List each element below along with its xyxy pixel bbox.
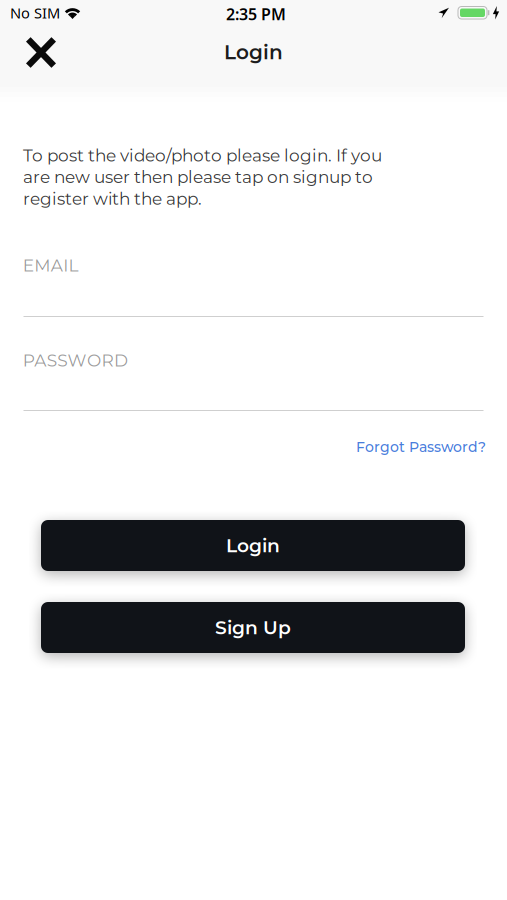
staticText: 2:35 PM (226, 3, 286, 25)
button[interactable]: Close (16, 29, 66, 76)
staticText: Sign Up (215, 616, 291, 639)
staticText: Forgot Password? (356, 438, 486, 456)
button[interactable]: Login (41, 520, 465, 571)
staticText: To post the video/photo please login. If… (23, 145, 382, 209)
staticText: EMAIL (23, 255, 79, 276)
staticText: Login (226, 534, 280, 557)
staticText: PASSWORD (23, 350, 128, 371)
button[interactable]: Sign Up (41, 602, 465, 653)
button[interactable]: Forgot Password? (356, 438, 486, 456)
staticText: No SIM (10, 3, 60, 22)
staticText: Login (224, 40, 283, 64)
